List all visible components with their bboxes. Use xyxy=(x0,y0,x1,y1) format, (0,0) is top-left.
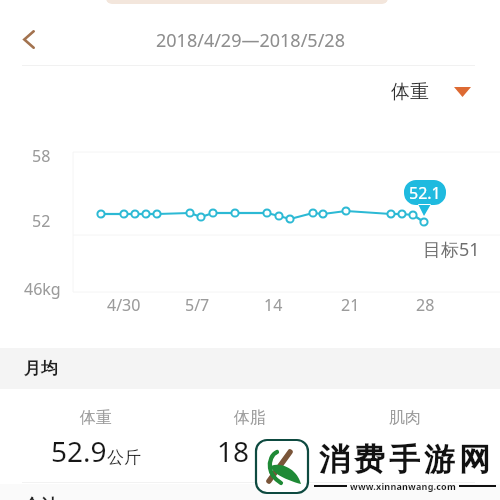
staticText: 目标51 xyxy=(423,237,480,262)
staticText: 体脂 xyxy=(234,408,266,428)
staticText: 52.1 xyxy=(409,182,441,204)
staticText: 肌肉 xyxy=(389,408,421,428)
staticText: 58 xyxy=(32,145,51,167)
staticText: 月均 xyxy=(24,358,58,379)
button[interactable]: 体重 xyxy=(391,80,471,104)
staticText: 18 xyxy=(217,432,250,470)
staticText: 5/7 xyxy=(185,294,210,316)
staticText: 21 xyxy=(341,294,360,316)
staticText: 14 xyxy=(264,294,283,316)
button[interactable]: 肌肉 xyxy=(330,404,480,468)
button[interactable]: Back xyxy=(9,19,49,59)
staticText: 52 xyxy=(32,210,51,232)
staticText: 4/30 xyxy=(107,294,141,316)
staticText: 合计 xyxy=(24,495,58,500)
staticText: www.xinnanwang.com xyxy=(350,480,456,492)
button[interactable]: 体重 xyxy=(21,404,171,468)
staticText: 消费手游网 xyxy=(317,440,492,479)
staticText: 28 xyxy=(416,294,435,316)
staticText: 46kg xyxy=(24,278,61,300)
staticText: 体重 xyxy=(391,80,429,104)
staticText: 52.9 xyxy=(51,432,107,470)
button[interactable]: 体脂 xyxy=(175,404,325,468)
staticText: 体重 xyxy=(80,408,112,428)
staticText: 2018/4/29—2018/5/28 xyxy=(156,28,345,53)
staticText: 公斤 xyxy=(107,447,141,468)
